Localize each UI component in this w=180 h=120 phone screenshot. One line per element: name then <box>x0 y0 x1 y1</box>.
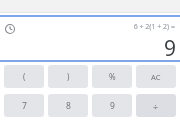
button[interactable]: % <box>92 65 132 88</box>
button[interactable]: History <box>2 21 18 37</box>
staticText: % <box>109 71 116 82</box>
staticText: ( <box>23 71 26 82</box>
staticText: 8 <box>66 100 71 112</box>
staticText: AC <box>151 72 161 82</box>
staticText: ) <box>67 71 70 82</box>
staticText: 6 ÷ 2(1 + 2) = <box>133 22 175 32</box>
button[interactable]: ) <box>48 65 88 88</box>
staticText: ÷ <box>153 100 159 112</box>
button[interactable]: 7 <box>4 94 44 117</box>
button[interactable]: 9 <box>92 94 132 117</box>
button[interactable]: 8 <box>48 94 88 117</box>
button[interactable]: ÷ <box>136 94 176 117</box>
button[interactable]: ( <box>4 65 44 88</box>
staticText: 7 <box>22 100 27 112</box>
staticText: 9 <box>110 100 115 112</box>
button[interactable]: AC <box>136 65 176 88</box>
staticText: 9 <box>163 34 176 58</box>
